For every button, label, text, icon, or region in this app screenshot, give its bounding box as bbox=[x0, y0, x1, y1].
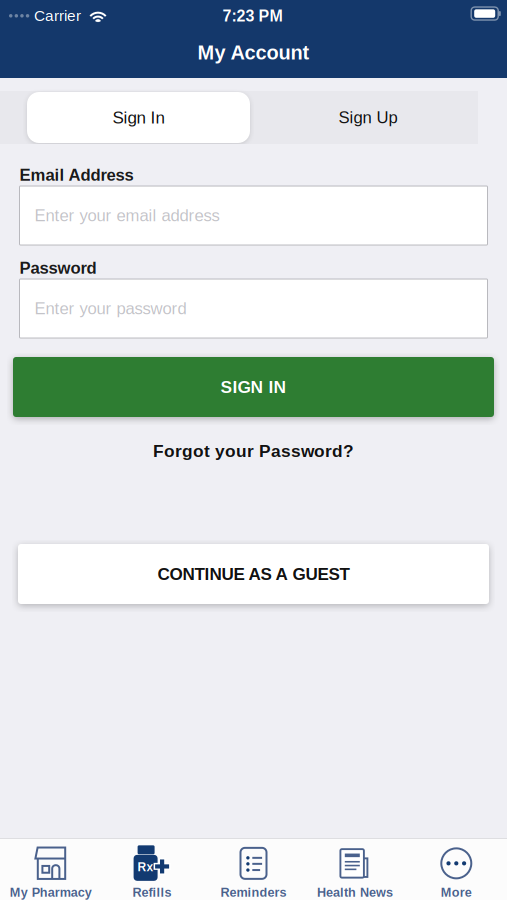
staticText: Enter your email address bbox=[34, 206, 219, 225]
staticText: Password bbox=[19, 259, 96, 277]
button[interactable]: Sign Up bbox=[250, 92, 486, 143]
staticText: Rx bbox=[138, 860, 154, 874]
staticText: Reminders bbox=[220, 885, 286, 900]
button[interactable]: Health News bbox=[304, 838, 406, 900]
button[interactable]: My Pharmacy bbox=[0, 838, 101, 900]
button[interactable]: Sign In bbox=[27, 92, 250, 143]
staticText: Forgot your Password? bbox=[153, 441, 354, 461]
staticText: My Account bbox=[197, 41, 309, 64]
button[interactable]: Rx bbox=[101, 838, 203, 900]
staticText: 7:23 PM bbox=[222, 7, 282, 25]
staticText: More bbox=[441, 885, 472, 900]
button[interactable]: Reminders bbox=[203, 838, 304, 900]
button[interactable]: SIGN IN bbox=[13, 357, 494, 417]
staticText: Refills bbox=[133, 885, 172, 900]
staticText: Enter your password bbox=[34, 299, 186, 318]
button[interactable]: CONTINUE AS A GUEST bbox=[18, 544, 489, 604]
staticText: Sign In bbox=[112, 108, 164, 127]
staticText: Email Address bbox=[19, 166, 133, 184]
staticText: CONTINUE AS A GUEST bbox=[157, 564, 349, 584]
staticText: Carrier bbox=[34, 7, 81, 24]
staticText: SIGN IN bbox=[220, 377, 286, 397]
staticText: Sign Up bbox=[338, 108, 397, 127]
button[interactable]: Forgot your Password? bbox=[19, 432, 487, 470]
button[interactable]: More bbox=[406, 838, 507, 900]
staticText: Health News bbox=[317, 885, 393, 900]
staticText: My Pharmacy bbox=[10, 885, 92, 900]
